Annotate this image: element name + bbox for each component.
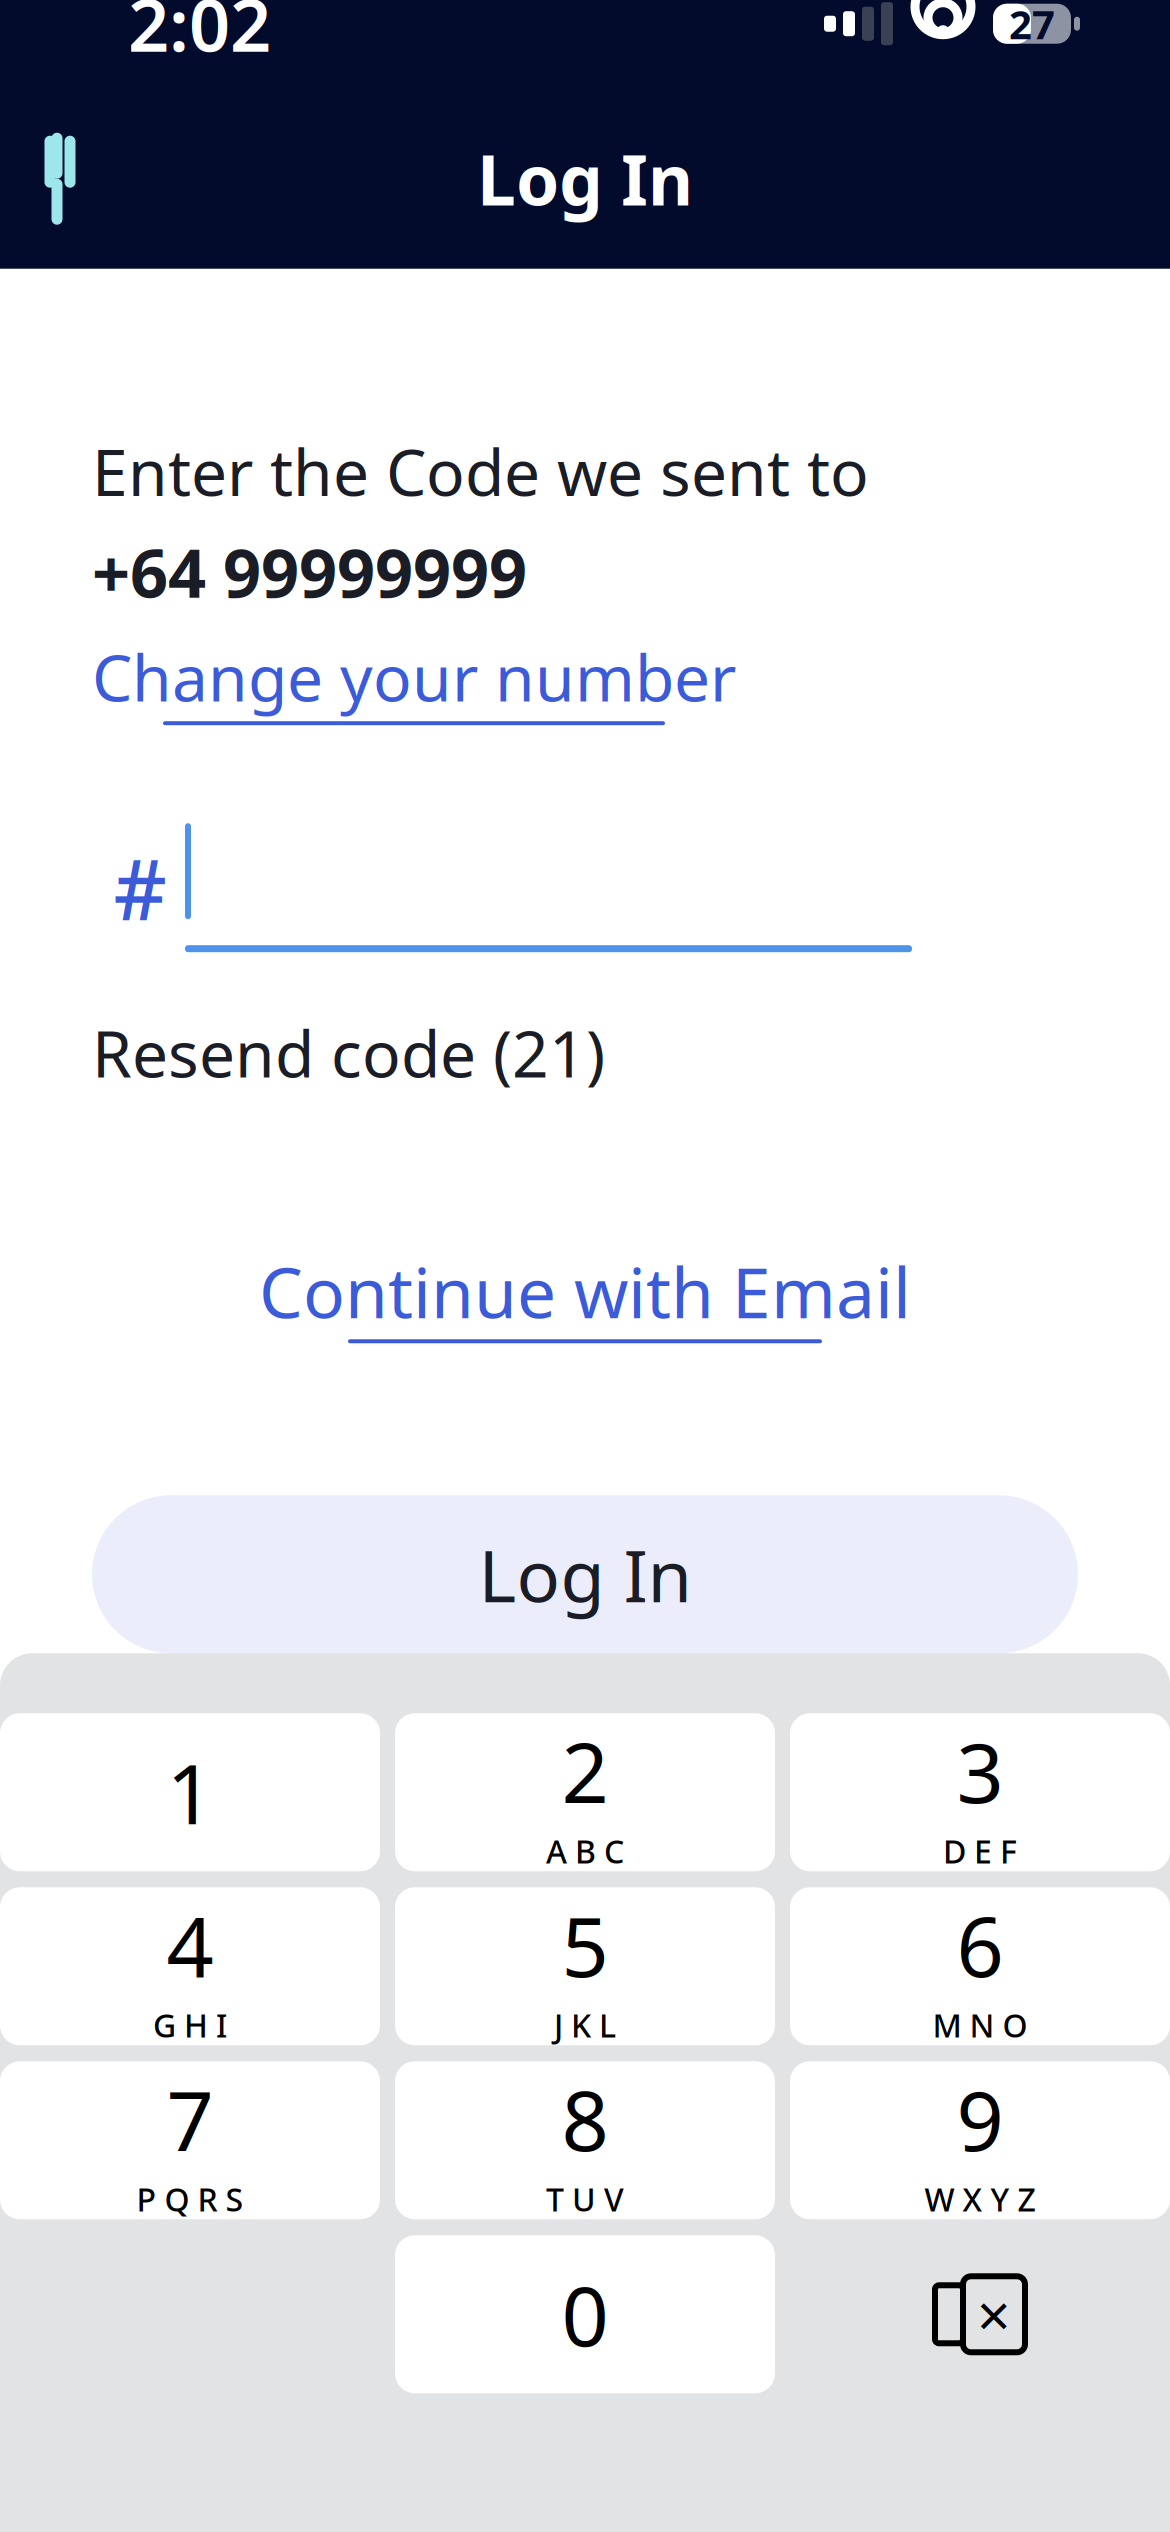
button[interactable]: 0 (395, 2235, 775, 2393)
button[interactable]: Delete (790, 2235, 1170, 2393)
staticText: M N O (932, 2004, 1027, 2046)
staticText: 7 (166, 2064, 213, 2174)
staticText: 2:02 (128, 0, 271, 71)
staticText: # (113, 833, 166, 943)
button[interactable]: 3 (790, 1713, 1170, 1871)
staticText: +64 99999999 (92, 528, 527, 616)
button[interactable]: 2 (395, 1713, 775, 1871)
staticText: 5 (561, 1890, 608, 2000)
button[interactable]: Back (0, 119, 120, 239)
staticText: Resend code (21) (92, 1010, 605, 1095)
staticText: Change your number (92, 634, 736, 719)
staticText: 2 (561, 1716, 608, 1826)
button[interactable]: Resend code (21) (92, 1010, 605, 1095)
staticText: 8 (561, 2064, 608, 2174)
staticText: 1 (166, 1737, 213, 1847)
button[interactable]: 9 (790, 2061, 1170, 2219)
staticText: Log In (477, 133, 693, 225)
staticText: 6 (956, 1890, 1003, 2000)
staticText: 27 (1009, 0, 1055, 50)
staticText: 4 (166, 1890, 213, 2000)
button[interactable]: Change your number (92, 634, 736, 725)
button[interactable]: Log In (92, 1495, 1078, 1653)
staticText: Continue with Email (259, 1245, 911, 1337)
button[interactable]: 6 (790, 1887, 1170, 2045)
staticText: 9 (956, 2064, 1003, 2174)
staticText: P Q R S (136, 2178, 243, 2220)
button[interactable]: Continue with Email (259, 1245, 911, 1343)
staticText: 0 (561, 2259, 608, 2369)
button[interactable]: 8 (395, 2061, 775, 2219)
staticText: J K L (554, 2004, 616, 2046)
staticText: × (977, 2275, 1011, 2353)
staticText: Enter the Code we sent to (92, 429, 869, 514)
staticText: G H I (153, 2004, 227, 2046)
staticText: W X Y Z (924, 2178, 1035, 2220)
staticText: 3 (956, 1716, 1003, 1826)
button[interactable]: 5 (395, 1887, 775, 2045)
button[interactable]: 7 (0, 2061, 380, 2219)
button[interactable]: 4 (0, 1887, 380, 2045)
button[interactable]: 1 (0, 1713, 380, 1871)
staticText: D E F (943, 1830, 1017, 1872)
staticText: T U V (546, 2178, 624, 2220)
staticText: A B C (546, 1830, 624, 1872)
staticText: Log In (478, 1526, 691, 1622)
